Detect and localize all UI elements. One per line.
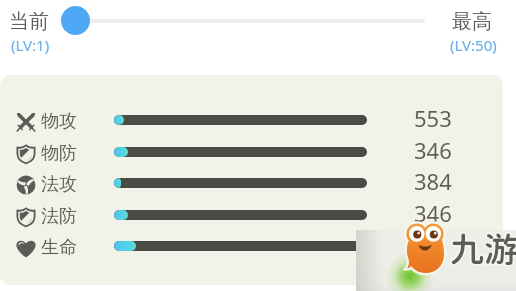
button[interactable]: 法攻: [0, 167, 516, 199]
button[interactable]: 物攻: [0, 104, 516, 136]
staticText: 553: [414, 103, 452, 133]
staticText: 最高: [452, 9, 492, 34]
staticText: 九游: [449, 230, 516, 270]
staticText: (LV:50): [450, 35, 497, 55]
button[interactable]: Level slider thumb: [61, 6, 90, 35]
staticText: 346: [414, 135, 452, 165]
button[interactable]: 最高: [452, 9, 499, 54]
staticText: 当前: [9, 9, 49, 34]
staticText: 生命: [41, 236, 77, 259]
staticText: (LV:1): [11, 35, 50, 55]
staticText: 九游: [451, 228, 516, 268]
button[interactable]: 法防: [0, 199, 516, 231]
staticText: 九游: [450, 228, 516, 268]
staticText: 九游: [450, 230, 516, 270]
button[interactable]: 生命: [0, 230, 516, 262]
staticText: 物攻: [41, 110, 77, 133]
staticText: 九游: [449, 229, 516, 269]
button[interactable]: 当前: [9, 9, 49, 54]
staticText: 法攻: [41, 173, 77, 196]
staticText: 九游: [449, 228, 516, 268]
staticText: 物防: [41, 142, 77, 165]
staticText: 384: [414, 166, 452, 196]
staticText: 九游: [451, 230, 516, 270]
button[interactable]: 物防: [0, 136, 516, 168]
staticText: 法防: [41, 205, 77, 228]
staticText: 1080: [414, 229, 465, 259]
staticText: 九游: [450, 229, 516, 269]
staticText: 346: [414, 198, 452, 228]
staticText: 九游: [451, 229, 516, 269]
